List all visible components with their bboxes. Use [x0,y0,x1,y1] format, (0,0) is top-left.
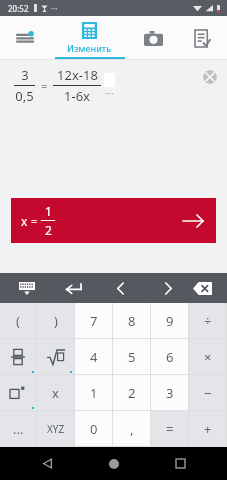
button[interactable]: Home [94,447,134,480]
staticText: = [31,213,38,228]
staticText: − [204,384,212,402]
button[interactable]: 9 [151,303,188,338]
staticText: 2 [45,222,52,238]
button[interactable]: … [0,411,36,446]
staticText: x [21,213,28,229]
button[interactable]: Fraction [0,339,36,374]
button[interactable]: ÷ [189,303,226,338]
staticText: 9 [166,312,174,330]
button[interactable]: × [189,339,226,374]
staticText: x [52,384,59,402]
staticText: ··· [51,3,58,14]
button[interactable]: Clear [203,70,217,84]
staticText: ÷ [204,312,212,330]
staticText: + [204,420,212,438]
button[interactable]: + [189,411,226,446]
staticText: = [41,78,48,93]
button[interactable]: 4 [75,339,112,374]
button[interactable]: 1 [75,375,112,410]
button[interactable]: Square root [37,339,74,374]
button[interactable]: Menu [0,16,50,60]
staticText: 7 [90,312,98,330]
staticText: 1-6x [64,87,90,105]
staticText: , [130,420,134,438]
button[interactable]: 7 [75,303,112,338]
staticText: 0 [90,420,98,438]
button[interactable]: ) [37,303,74,338]
staticText: 4 [90,348,98,366]
staticText: 5 [128,348,136,366]
staticText: 3 [21,66,29,84]
button[interactable]: Previous [108,276,132,300]
staticText: XYZ [47,422,65,436]
button[interactable]: 3 [151,375,188,410]
button[interactable]: Recents [160,447,200,480]
button[interactable]: ( [0,303,36,338]
staticText: ···· [105,88,114,99]
button[interactable]: − [189,375,226,410]
button[interactable]: Изменить [50,16,129,60]
button[interactable]: 2 [113,375,150,410]
staticText: 2 [128,384,136,402]
staticText: Изменить [67,42,112,54]
staticText: 6 [166,348,174,366]
staticText: 1 [90,384,98,402]
button[interactable]: 8 [113,303,150,338]
button[interactable]: Hide keyboard [14,275,40,301]
staticText: 8 [128,312,136,330]
button[interactable]: Backspace [187,273,217,303]
staticText: 0,5 [15,87,34,105]
button[interactable]: 0 [75,411,112,446]
staticText: ) [54,312,58,330]
button[interactable]: , [113,411,150,446]
button[interactable]: = [151,411,188,446]
button[interactable]: Power [0,375,36,410]
button[interactable]: 5 [113,339,150,374]
button[interactable]: Notes [178,16,227,60]
staticText: = [166,420,174,438]
button[interactable]: Next [156,276,180,300]
button[interactable]: XYZ [37,411,74,446]
button[interactable]: Enter [60,275,86,301]
staticText: 1 [45,203,52,219]
staticText: 20:52 [8,3,29,14]
staticText: × [204,348,212,366]
staticText: 12x-18 [57,66,98,84]
button[interactable]: 6 [151,339,188,374]
button[interactable]: Back [27,447,67,480]
staticText: … [13,420,24,438]
staticText: 3 [166,384,174,402]
button[interactable]: x [11,198,216,243]
button[interactable]: Camera [129,16,178,60]
button[interactable]: x [37,375,74,410]
staticText: ( [16,312,20,330]
